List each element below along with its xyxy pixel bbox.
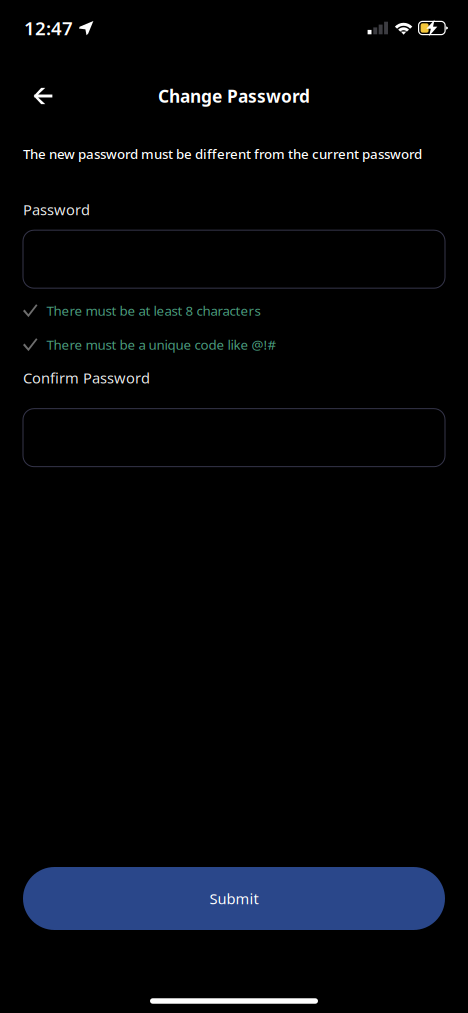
- staticText: Confirm Password: [23, 368, 150, 388]
- staticText: The new password must be different from …: [23, 145, 422, 163]
- staticText: There must be a unique code like @!#: [46, 336, 276, 353]
- staticText: Password: [23, 200, 90, 219]
- staticText: 12:47: [24, 16, 73, 40]
- staticText: Change Password: [158, 84, 310, 107]
- button[interactable]: Submit: [23, 867, 445, 930]
- button[interactable]: Back: [21, 76, 65, 116]
- staticText: Submit: [209, 889, 258, 908]
- staticText: There must be at least 8 characters: [46, 302, 260, 319]
- button[interactable]: Confirm Password: [23, 409, 445, 467]
- button[interactable]: Password: [23, 230, 445, 288]
